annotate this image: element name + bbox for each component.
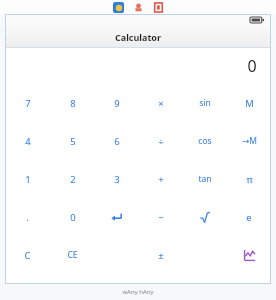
button[interactable]: 8 xyxy=(50,84,95,122)
staticText: − xyxy=(158,211,164,224)
button[interactable]: 1 xyxy=(5,160,50,198)
button[interactable]: e xyxy=(227,198,271,236)
staticText: 8 xyxy=(70,97,76,110)
staticText: tan xyxy=(198,173,212,185)
button[interactable]: 4 xyxy=(5,122,50,160)
button[interactable]: CE xyxy=(50,236,95,274)
button[interactable]: 6 xyxy=(95,122,139,160)
button[interactable]: 5 xyxy=(50,122,95,160)
button[interactable]: sin xyxy=(183,84,227,122)
staticText: →M xyxy=(242,135,257,147)
staticText: . xyxy=(26,211,29,224)
staticText: 9 xyxy=(114,97,120,110)
button[interactable]: − xyxy=(139,198,183,236)
staticText: M xyxy=(245,97,254,110)
button[interactable]: 0 xyxy=(50,198,95,236)
button[interactable]: 9 xyxy=(95,84,139,122)
staticText: + xyxy=(158,173,164,186)
button[interactable]: Exit xyxy=(153,2,164,13)
button[interactable]: Enter xyxy=(95,198,139,236)
staticText: 7 xyxy=(25,97,31,110)
staticText: 0 xyxy=(70,211,76,224)
button[interactable]: View controller xyxy=(113,2,124,13)
staticText: 3 xyxy=(114,173,120,186)
staticText: 0 xyxy=(247,55,257,77)
staticText: π xyxy=(246,173,253,186)
button[interactable]: M xyxy=(227,84,271,122)
staticText: Calculator xyxy=(115,31,161,43)
staticText: C xyxy=(24,249,31,262)
staticText: ± xyxy=(158,249,164,262)
button[interactable]: ÷ xyxy=(139,122,183,160)
button[interactable]: C xyxy=(5,236,50,274)
staticText: × xyxy=(158,97,164,110)
staticText: 6 xyxy=(114,135,120,148)
button[interactable]: 2 xyxy=(50,160,95,198)
staticText: 2 xyxy=(70,173,76,186)
staticText: e xyxy=(246,211,252,224)
button[interactable]: Square root xyxy=(183,198,227,236)
button[interactable]: ± xyxy=(139,236,183,274)
staticText: CE xyxy=(67,249,78,261)
button[interactable]: →M xyxy=(227,122,271,160)
staticText: cos xyxy=(198,135,212,147)
button[interactable]: π xyxy=(227,160,271,198)
button[interactable]: + xyxy=(139,160,183,198)
staticText: 1 xyxy=(25,173,31,186)
button[interactable]: 7 xyxy=(5,84,50,122)
button[interactable]: Graph xyxy=(227,236,271,274)
button[interactable]: First responder xyxy=(133,2,144,13)
button[interactable]: tan xyxy=(183,160,227,198)
button[interactable]: × xyxy=(139,84,183,122)
staticText: sin xyxy=(199,97,211,109)
button[interactable]: 3 xyxy=(95,160,139,198)
button[interactable]: . xyxy=(5,198,50,236)
staticText: ÷ xyxy=(158,135,164,148)
staticText: wAny hAny xyxy=(122,288,154,296)
staticText: 5 xyxy=(70,135,76,148)
button[interactable]: cos xyxy=(183,122,227,160)
staticText: 4 xyxy=(25,135,31,148)
